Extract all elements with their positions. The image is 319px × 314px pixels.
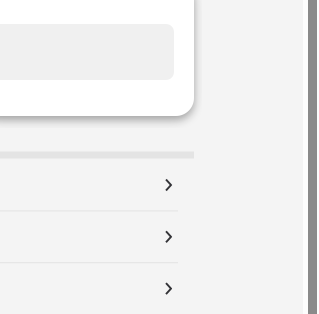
button[interactable]: Open item [0, 263, 194, 314]
button[interactable]: Open item [0, 211, 194, 263]
button[interactable]: Open item [0, 160, 194, 211]
